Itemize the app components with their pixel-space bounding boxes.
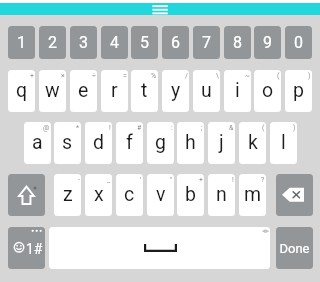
staticText: @ — [43, 124, 50, 132]
button[interactable]: 8 — [224, 26, 251, 59]
staticText: ' — [140, 176, 142, 184]
button[interactable]: - — [54, 174, 81, 216]
staticText: g — [155, 131, 166, 154]
button[interactable]: ; — [177, 122, 204, 164]
staticText: 0 — [294, 33, 303, 52]
staticText: ) — [308, 72, 311, 80]
staticText: = — [123, 72, 127, 80]
staticText: 2 — [48, 33, 57, 52]
staticText: & — [229, 124, 234, 132]
button[interactable]: ( — [239, 122, 266, 164]
staticText: 6 — [171, 33, 180, 52]
button[interactable]: ' — [116, 174, 143, 216]
staticText: ! — [109, 124, 111, 132]
button[interactable]: ! — [208, 174, 235, 216]
button[interactable]: ÷ — [70, 70, 97, 112]
staticText: # — [137, 124, 142, 132]
staticText: o — [262, 79, 274, 102]
staticText: " — [170, 176, 173, 184]
staticText: 3 — [79, 33, 88, 52]
staticText: _ — [107, 176, 111, 184]
button[interactable]: % — [131, 70, 158, 112]
button[interactable]: @ — [24, 122, 51, 164]
staticText: ? — [261, 176, 265, 184]
button[interactable]: = — [101, 70, 128, 112]
button[interactable]: 6 — [162, 26, 189, 59]
staticText: - — [78, 176, 80, 184]
button[interactable]: 5 — [131, 26, 158, 59]
button[interactable]: 7 — [193, 26, 220, 59]
staticText: \ — [216, 72, 219, 80]
staticText: h — [185, 131, 196, 154]
staticText: : — [171, 124, 173, 132]
staticText: t — [141, 79, 148, 102]
button[interactable]: : — [147, 122, 174, 164]
staticText: ~ — [245, 72, 250, 80]
button[interactable]: * — [54, 122, 81, 164]
staticText: x — [94, 183, 104, 206]
staticText: 8 — [233, 33, 242, 52]
staticText: ) — [293, 124, 296, 132]
button[interactable]: Keyboard drag handle — [0, 3, 320, 15]
button[interactable]: ! — [85, 122, 112, 164]
button[interactable]: 4 — [101, 26, 128, 59]
button[interactable]: 2 — [39, 26, 66, 59]
button[interactable]: + — [177, 174, 204, 216]
staticText: % — [151, 72, 157, 80]
button[interactable]: 9 — [254, 26, 281, 59]
staticText: 1# — [26, 241, 43, 257]
button[interactable]: 3 — [70, 26, 97, 59]
staticText: r — [111, 79, 118, 102]
staticText: k — [248, 131, 258, 154]
button[interactable]: ) — [285, 70, 312, 112]
staticText: / — [185, 72, 188, 80]
button[interactable]: Backspace — [276, 174, 313, 216]
staticText: m — [244, 183, 262, 206]
staticText: q — [16, 79, 28, 102]
staticText: 1 — [17, 33, 26, 52]
button[interactable]: _ — [85, 174, 112, 216]
staticText: 7 — [202, 33, 211, 52]
staticText: u — [201, 79, 212, 102]
staticText: * — [76, 124, 80, 132]
staticText: ◂▸ — [262, 227, 270, 235]
staticText: f — [126, 131, 133, 154]
staticText: e — [78, 79, 89, 102]
staticText: b — [185, 183, 196, 206]
staticText: 5 — [140, 33, 149, 52]
staticText: ; — [201, 124, 203, 132]
button[interactable]: & — [208, 122, 235, 164]
button[interactable]: Shift — [8, 174, 45, 216]
staticText: × — [61, 72, 65, 80]
staticText: + — [199, 176, 203, 184]
button[interactable]: Emoji and symbols — [8, 227, 45, 269]
button[interactable]: ( — [254, 70, 281, 112]
button[interactable]: / — [162, 70, 189, 112]
staticText: s — [62, 131, 73, 154]
button[interactable]: # — [116, 122, 143, 164]
button[interactable]: 1 — [8, 26, 35, 59]
staticText: v — [156, 183, 166, 206]
button[interactable]: 0 — [285, 26, 312, 59]
button[interactable]: \ — [193, 70, 220, 112]
staticText: d — [93, 131, 104, 154]
button[interactable]: " — [147, 174, 174, 216]
button[interactable]: ) — [270, 122, 297, 164]
button[interactable]: ~ — [224, 70, 251, 112]
button[interactable]: + — [8, 70, 35, 112]
staticText: j — [219, 131, 224, 154]
button[interactable]: ? — [239, 174, 266, 216]
staticText: p — [293, 79, 304, 102]
button[interactable]: Done — [276, 227, 313, 269]
staticText: a — [32, 131, 43, 154]
staticText: ( — [262, 124, 265, 132]
staticText: 9 — [263, 33, 272, 52]
staticText: Done — [279, 241, 310, 256]
staticText: l — [281, 131, 286, 154]
button[interactable]: × — [39, 70, 66, 112]
staticText: y — [171, 79, 181, 102]
staticText: + — [30, 72, 34, 80]
staticText: 4 — [110, 33, 119, 52]
staticText: w — [45, 79, 60, 102]
button[interactable]: Space — [49, 227, 270, 269]
